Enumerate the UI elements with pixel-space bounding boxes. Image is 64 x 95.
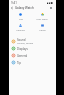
button[interactable]: Help — [48, 5, 54, 11]
staticText: General — [17, 54, 28, 58]
staticText: Sound — [17, 38, 26, 42]
button[interactable]: General — [9, 52, 56, 59]
staticText: Displays — [17, 47, 28, 51]
button[interactable]: Play Store — [31, 13, 53, 20]
staticText: Tip — [17, 61, 21, 65]
button[interactable]: Tip — [9, 59, 56, 66]
staticText: Volume, vibrate — [17, 42, 34, 45]
staticText: 9:41 — [11, 1, 17, 5]
button[interactable]: Back — [9, 5, 15, 11]
button[interactable]: Sound — [9, 38, 56, 45]
staticText: Tile — [19, 17, 23, 20]
staticText: Play Store — [36, 17, 48, 20]
button[interactable]: Contact — [10, 24, 31, 31]
button[interactable]: Displays — [9, 45, 56, 52]
staticText: Cards — [39, 28, 46, 31]
button[interactable]: Cards — [31, 24, 53, 31]
staticText: Contact — [16, 28, 25, 31]
staticText: Galaxy Watch — [15, 6, 34, 10]
button[interactable]: Tile — [10, 13, 31, 20]
